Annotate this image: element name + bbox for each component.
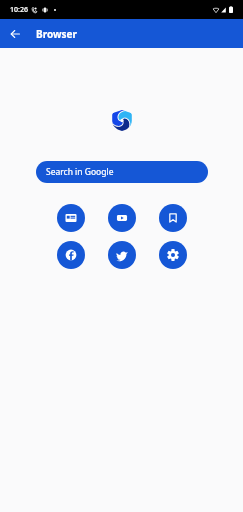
button[interactable]: Bookmarks [159,204,187,232]
button[interactable]: News [57,204,85,232]
button[interactable]: Facebook [57,241,85,269]
button[interactable]: Search in Google [36,161,208,183]
staticText: Search in Google [46,166,114,178]
button[interactable]: Twitter [108,241,136,269]
staticText: Browser [36,27,77,41]
button[interactable]: YouTube [108,204,136,232]
staticText: 10:26 [10,5,28,15]
button[interactable]: Settings [159,241,187,269]
button[interactable]: Back [5,24,25,44]
